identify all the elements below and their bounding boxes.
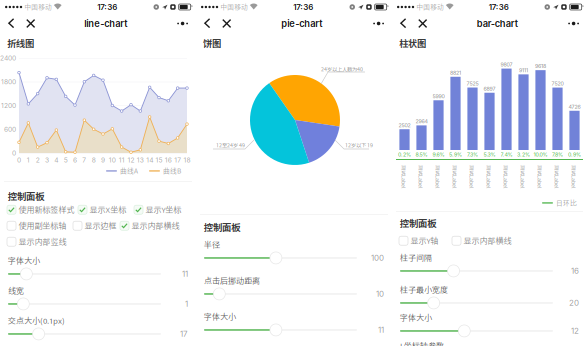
- staticText: 15: [155, 156, 162, 164]
- staticText: 测试Label: [391, 174, 415, 180]
- staticText: 使用新标签样式: [18, 205, 74, 214]
- staticText: 10.0%: [533, 151, 547, 158]
- button[interactable]: 显示内部横线: [452, 236, 511, 245]
- staticText: 柱状图: [399, 38, 426, 49]
- staticText: 控制面板: [400, 218, 436, 229]
- staticText: 字体大小: [400, 313, 432, 322]
- staticText: 14: [146, 156, 153, 164]
- staticText: 9618: [535, 63, 546, 69]
- staticText: 控制面板: [8, 191, 44, 202]
- staticText: 测试Label: [459, 174, 483, 180]
- staticText: 8: [92, 156, 96, 164]
- staticText: 7525: [466, 80, 478, 87]
- staticText: 9807: [500, 61, 512, 68]
- button[interactable]: Back: [2, 15, 21, 32]
- staticText: 使用副坐标轴: [18, 221, 66, 230]
- staticText: bar-chart: [477, 18, 518, 29]
- button[interactable]: 柱子最小宽度: [400, 296, 553, 309]
- staticText: 8821: [450, 69, 461, 76]
- staticText: 折线图: [7, 38, 34, 49]
- staticText: 13: [137, 156, 144, 164]
- button[interactable]: 字体大小: [400, 324, 553, 337]
- button[interactable]: Close: [217, 15, 236, 32]
- staticText: 10: [376, 289, 384, 299]
- staticText: 4726: [568, 103, 580, 110]
- staticText: 曲线B: [163, 167, 181, 175]
- staticText: pie-chart: [281, 18, 322, 29]
- staticText: 饼图: [203, 38, 221, 49]
- button[interactable]: 点击后挪动距离: [204, 287, 357, 300]
- staticText: 0.9%: [568, 151, 581, 158]
- staticText: 7.3%: [467, 151, 478, 158]
- staticText: 显示Y坐标: [145, 205, 181, 214]
- button[interactable]: 显示Y轴: [399, 236, 438, 245]
- staticText: 显示X坐标: [89, 205, 126, 214]
- button[interactable]: 显示X坐标: [78, 205, 126, 214]
- button[interactable]: Close: [413, 15, 432, 32]
- staticText: 12岁以下 19: [345, 142, 373, 148]
- staticText: 16: [571, 266, 579, 276]
- staticText: 17: [180, 329, 188, 339]
- button[interactable]: More: [171, 15, 194, 31]
- staticText: 显示内部横线: [463, 236, 511, 245]
- staticText: 17:36: [489, 2, 509, 12]
- staticText: 7520: [551, 80, 563, 87]
- staticText: 字体大小: [204, 312, 236, 321]
- staticText: 显示边框: [84, 221, 116, 230]
- button[interactable]: 显示Y坐标: [134, 205, 181, 214]
- staticText: 11: [119, 156, 125, 164]
- staticText: 中国移动: [416, 3, 444, 11]
- button[interactable]: 字体大小: [8, 267, 161, 280]
- staticText: 3.2%: [517, 151, 530, 158]
- button[interactable]: 字体大小: [204, 323, 357, 336]
- button[interactable]: 使用副坐标轴: [7, 221, 66, 230]
- staticText: 半径: [204, 240, 220, 249]
- staticText: 11: [378, 325, 384, 335]
- staticText: 测试Label: [544, 174, 568, 180]
- staticText: 12: [127, 156, 134, 164]
- staticText: 9111: [519, 67, 528, 74]
- button[interactable]: 显示内部竖线: [7, 237, 66, 246]
- button[interactable]: 半径: [204, 251, 357, 264]
- staticText: 曲线A: [120, 167, 138, 175]
- staticText: 柱子间隔: [400, 253, 432, 262]
- button[interactable]: 交点大小(0.1px): [8, 327, 161, 340]
- staticText: 24岁以上人数为40: [321, 66, 363, 72]
- staticText: 测试Label: [493, 174, 517, 180]
- staticText: 中国移动: [24, 3, 52, 11]
- staticText: 交点大小(0.1px): [8, 316, 65, 325]
- staticText: 2400: [0, 54, 16, 62]
- staticText: 9.6%: [432, 151, 444, 158]
- button[interactable]: More: [367, 15, 390, 31]
- staticText: 12: [571, 326, 579, 336]
- staticText: 显示Y轴: [410, 236, 438, 245]
- button[interactable]: 显示边框: [73, 221, 116, 230]
- staticText: 7.8%: [552, 151, 563, 158]
- button[interactable]: Back: [198, 15, 217, 32]
- staticText: 20: [569, 298, 579, 308]
- staticText: 5.3%: [483, 151, 495, 158]
- button[interactable]: Close: [21, 15, 40, 32]
- button[interactable]: 使用新标签样式: [7, 205, 74, 214]
- staticText: 线宽: [8, 286, 24, 295]
- staticText: 字体大小: [8, 256, 40, 265]
- staticText: 4: [54, 156, 58, 164]
- staticText: 2964: [415, 118, 427, 125]
- button[interactable]: 线宽: [8, 297, 161, 310]
- staticText: 0: [12, 149, 16, 157]
- staticText: 5.9%: [449, 151, 462, 158]
- button[interactable]: More: [562, 15, 585, 31]
- staticText: 18: [183, 156, 190, 164]
- staticText: 17:36: [293, 2, 313, 12]
- staticText: 10: [109, 156, 116, 164]
- staticText: 11: [182, 269, 188, 279]
- button[interactable]: 显示内部横线: [120, 221, 179, 230]
- button[interactable]: 柱子间隔: [400, 264, 553, 277]
- staticText: 测试Label: [527, 174, 551, 180]
- staticText: 控制面板: [204, 222, 240, 233]
- staticText: 9: [101, 156, 105, 164]
- button[interactable]: Back: [394, 15, 413, 32]
- staticText: 1200: [1, 101, 16, 110]
- staticText: 8.5%: [415, 151, 427, 158]
- staticText: 日环比: [556, 199, 577, 207]
